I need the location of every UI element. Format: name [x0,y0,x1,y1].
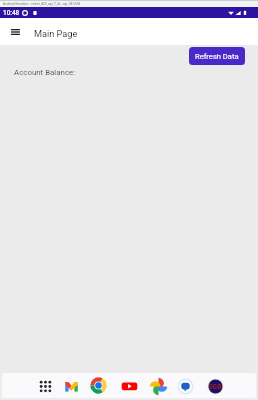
staticText: 10:48 [3,9,20,17]
staticText: Main Page [34,28,78,39]
button[interactable]: SGB bank app [207,378,224,395]
staticText: Refresh Data [195,52,239,61]
button[interactable]: All apps [37,378,54,395]
button[interactable]: Photos [150,378,167,395]
button[interactable]: Messages [177,378,194,395]
button[interactable]: Menu [8,23,23,41]
staticText: Account Balance: [14,68,76,77]
button[interactable]: Refresh Data [189,47,245,65]
staticText: Android Emulator - redmi_A25_api_7_4x...… [3,2,81,6]
button[interactable]: Chrome [90,377,107,394]
staticText: SGB [209,382,222,391]
button[interactable]: YouTube [121,378,138,395]
button[interactable]: Gmail [63,378,80,395]
